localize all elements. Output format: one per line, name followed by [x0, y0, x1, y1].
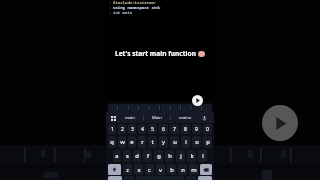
staticText: k	[190, 152, 194, 160]
button[interactable]: l	[198, 150, 207, 162]
button[interactable]: 9	[192, 124, 201, 134]
button[interactable]: Keyboard menu	[109, 114, 117, 122]
button[interactable]: k	[187, 150, 196, 162]
staticText: b	[170, 166, 174, 174]
button[interactable]: Main	[152, 115, 162, 121]
button[interactable]: x	[134, 164, 143, 175]
staticText: #include<iostream>	[113, 0, 157, 5]
staticText: 8	[184, 126, 187, 133]
staticText: 1	[109, 0, 112, 5]
button[interactable]: u	[170, 136, 179, 148]
button[interactable]: Play video	[262, 105, 298, 141]
staticText: d	[135, 152, 139, 160]
button[interactable]: m	[189, 164, 198, 175]
staticText: using namespace std;	[113, 5, 161, 10]
staticText: r	[141, 138, 144, 146]
button[interactable]: Shift	[108, 164, 121, 175]
button[interactable]: e	[128, 136, 136, 148]
button[interactable]: g	[154, 150, 163, 162]
button[interactable]: i	[181, 136, 190, 148]
button[interactable]: main	[125, 115, 135, 121]
staticText: 5	[151, 126, 154, 133]
button[interactable]: Backspace	[200, 164, 212, 175]
button[interactable]: Enter	[198, 176, 212, 180]
staticText: main	[125, 115, 135, 121]
staticText: 7	[173, 126, 176, 133]
staticText: i	[185, 138, 187, 146]
button[interactable]: t	[148, 136, 157, 148]
staticText: e	[130, 138, 134, 146]
staticText: c	[148, 166, 151, 174]
staticText: x	[137, 166, 141, 174]
button[interactable]: Symbols	[108, 176, 122, 180]
button[interactable]: 8	[181, 124, 190, 134]
staticText: l	[202, 152, 204, 160]
staticText: Main	[152, 115, 162, 121]
button[interactable]: 1	[108, 124, 116, 134]
staticText: 3	[131, 126, 134, 133]
button[interactable]: b	[167, 164, 176, 175]
button[interactable]: h	[165, 150, 174, 162]
staticText: Let's start main function	[115, 49, 196, 58]
staticText: p	[206, 138, 210, 146]
button[interactable]: Voice input	[200, 114, 208, 122]
button[interactable]: 5	[148, 124, 157, 134]
staticText: o	[195, 138, 199, 146]
staticText: 2	[109, 5, 112, 10]
staticText: 1	[111, 126, 114, 133]
button[interactable]: o	[192, 136, 201, 148]
staticText: y	[162, 138, 165, 146]
staticText: 0	[206, 126, 209, 133]
staticText: maine	[179, 115, 192, 121]
staticText: j	[180, 152, 182, 160]
staticText: w	[120, 138, 125, 146]
button[interactable]: 0	[203, 124, 212, 134]
button[interactable]: a	[113, 150, 121, 162]
staticText: f	[147, 152, 149, 160]
button[interactable]: f	[143, 150, 152, 162]
staticText: 3	[109, 10, 112, 15]
staticText: 2	[121, 126, 124, 133]
staticText: s	[126, 152, 129, 160]
staticText: a	[115, 152, 119, 160]
button[interactable]: 6	[159, 124, 168, 134]
staticText: v	[159, 166, 162, 174]
staticText: t	[151, 138, 154, 146]
button[interactable]: j	[176, 150, 185, 162]
button[interactable]: 4	[138, 124, 146, 134]
button[interactable]: p	[203, 136, 212, 148]
staticText: 4	[141, 126, 144, 133]
button[interactable]: y	[159, 136, 168, 148]
staticText: n	[181, 166, 185, 174]
staticText: 6	[162, 126, 165, 133]
button[interactable]: c	[145, 164, 154, 175]
button[interactable]: 2	[118, 124, 126, 134]
button[interactable]: q	[108, 136, 116, 148]
staticText: h	[168, 152, 172, 160]
staticText: u	[173, 138, 177, 146]
staticText: g	[157, 152, 161, 160]
button[interactable]: maine	[179, 115, 192, 121]
button[interactable]: d	[133, 150, 141, 162]
button[interactable]: 7	[170, 124, 179, 134]
button[interactable]: v	[156, 164, 165, 175]
button[interactable]: z	[123, 164, 132, 175]
button[interactable]: r	[138, 136, 146, 148]
staticText: q	[110, 138, 114, 146]
button[interactable]: s	[123, 150, 131, 162]
button[interactable]: Play	[192, 95, 203, 106]
staticText: int main	[113, 10, 133, 15]
button[interactable]: w	[118, 136, 126, 148]
staticText: z	[126, 166, 129, 174]
staticText: 9	[195, 126, 198, 133]
button[interactable]: 3	[128, 124, 136, 134]
staticText: m	[191, 166, 197, 174]
button[interactable]: n	[178, 164, 187, 175]
